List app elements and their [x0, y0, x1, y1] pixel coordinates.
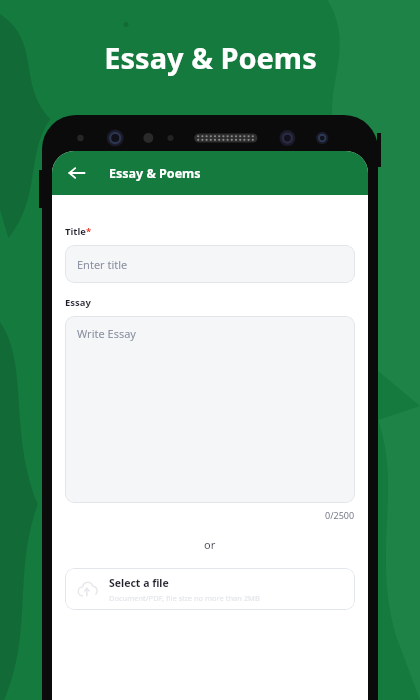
staticText: Document/PDF, file size no more than 2MB — [109, 593, 260, 603]
button[interactable]: Select a file — [65, 568, 355, 610]
staticText: Enter title — [77, 257, 128, 272]
staticText: 0/2500 — [325, 509, 355, 521]
staticText: Select a file — [109, 576, 169, 590]
staticText: Essay — [65, 296, 91, 309]
staticText: or — [204, 537, 216, 552]
button[interactable]: Write Essay — [65, 316, 355, 503]
staticText: Title — [65, 225, 86, 238]
button[interactable]: Back — [60, 156, 94, 190]
staticText: Essay & Poems — [109, 165, 201, 182]
staticText: Write Essay — [77, 326, 136, 341]
staticText: Essay & Poems — [104, 38, 317, 77]
staticText: * — [86, 225, 92, 238]
button[interactable]: Enter title — [65, 245, 355, 283]
